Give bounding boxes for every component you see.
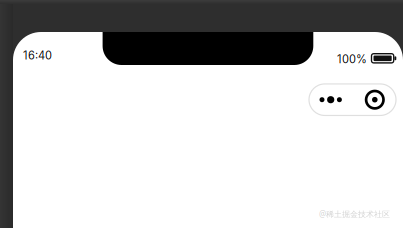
staticText: 100% [337, 52, 367, 66]
staticText: @稀土掘金技术社区 [319, 209, 390, 219]
staticText: 16:40 [23, 49, 52, 62]
button[interactable]: Screen recording controls [309, 84, 396, 115]
